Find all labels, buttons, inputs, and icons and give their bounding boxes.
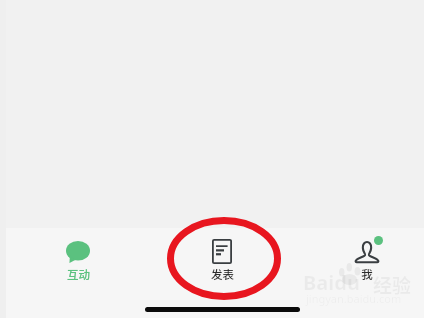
button[interactable]: Publish — [177, 238, 267, 286]
staticText: 经验 — [373, 271, 412, 299]
button[interactable]: Interact — [33, 238, 123, 286]
staticText: 我 — [361, 266, 373, 283]
staticText: 发表 — [211, 266, 234, 283]
staticText: Baidu — [303, 269, 360, 296]
button[interactable]: Me — [322, 238, 412, 286]
staticText: 互动 — [67, 266, 90, 283]
